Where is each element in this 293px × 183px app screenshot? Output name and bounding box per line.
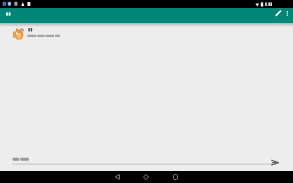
button[interactable]: [283, 8, 292, 20]
button[interactable]: [165, 171, 185, 183]
button[interactable]: [108, 171, 128, 183]
button[interactable]: [136, 171, 156, 183]
button[interactable]: [266, 156, 283, 169]
button[interactable]: [0, 26, 293, 43]
button[interactable]: [272, 8, 285, 22]
button[interactable]: [0, 152, 293, 171]
